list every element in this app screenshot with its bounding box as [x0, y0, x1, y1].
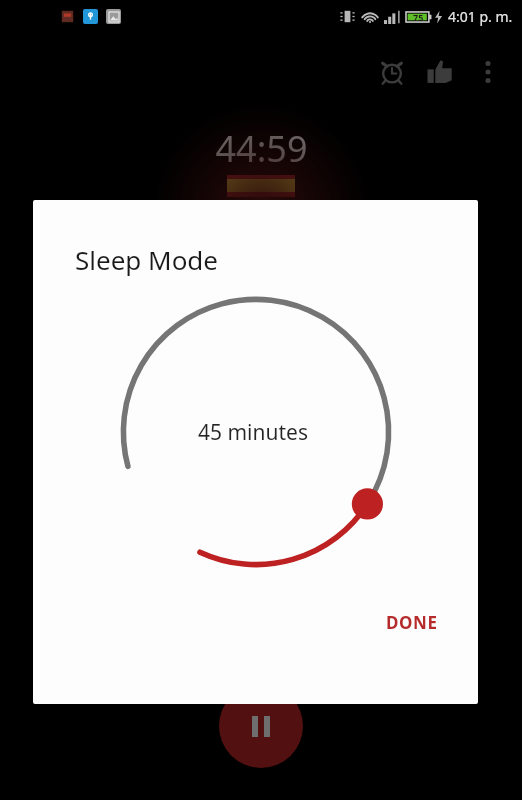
button[interactable]: Set alarm	[368, 48, 416, 96]
button[interactable]: Pause	[219, 684, 303, 768]
button[interactable]: DONE	[370, 601, 454, 644]
staticText: 45 minutes	[198, 418, 308, 447]
staticText: 4:01 p. m.	[448, 7, 513, 26]
button[interactable]: Sleep duration selector	[106, 282, 406, 582]
staticText: 75	[413, 11, 424, 23]
staticText: 44:59	[215, 124, 308, 173]
button[interactable]: Like	[416, 48, 464, 96]
staticText: Sleep Mode	[75, 242, 219, 277]
button[interactable]: More options	[464, 48, 512, 96]
staticText: DONE	[386, 611, 438, 634]
